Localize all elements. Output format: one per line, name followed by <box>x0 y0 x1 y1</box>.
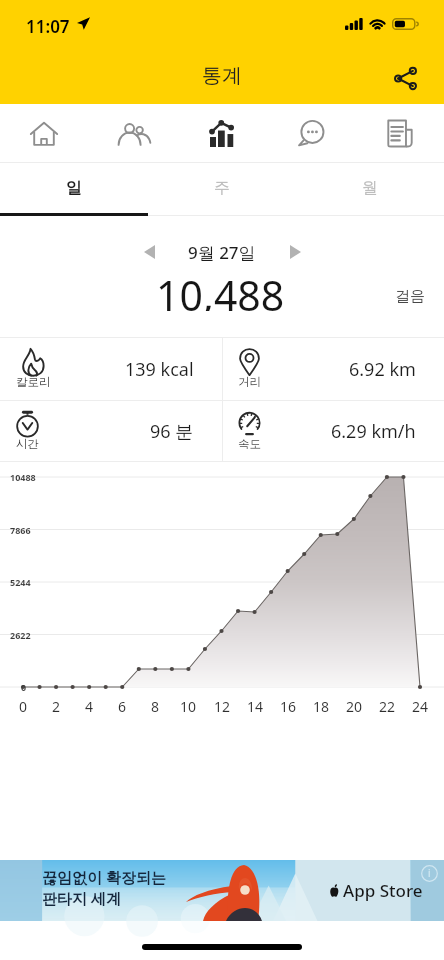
staticText: 5244 <box>10 576 31 588</box>
staticText: 4 <box>75 697 103 716</box>
staticText: 주 <box>214 178 230 198</box>
staticText: 18 <box>307 697 335 716</box>
staticText: 12 <box>208 697 236 716</box>
button[interactable]: Previous day <box>129 232 169 272</box>
button[interactable]: Statistics <box>177 104 266 163</box>
staticText: App Store <box>343 879 423 902</box>
staticText: 6.92 km <box>349 357 416 382</box>
button[interactable]: 속도 <box>222 401 444 461</box>
button[interactable]: Ad information <box>421 865 438 882</box>
button[interactable]: News <box>355 104 444 163</box>
staticText: 월 <box>362 178 378 198</box>
staticText: 10,488 <box>156 267 285 311</box>
button[interactable]: 끊임없이 확장되는 판타지 세계 <box>0 860 444 921</box>
staticText: 속도 <box>238 437 261 451</box>
staticText: 통계 <box>202 63 242 88</box>
staticText: 8 <box>141 697 169 716</box>
staticText: 22 <box>373 697 401 716</box>
staticText: 칼로리 <box>16 375 51 389</box>
staticText: 9월 27일 <box>188 241 256 264</box>
staticText: 0 <box>21 681 27 693</box>
staticText: 시간 <box>16 437 39 451</box>
staticText: 20 <box>340 697 368 716</box>
staticText: 10488 <box>10 471 36 483</box>
button[interactable]: 칼로리 <box>0 338 222 400</box>
staticText: 6.29 km/h <box>331 419 416 444</box>
button[interactable]: Chat <box>266 104 355 163</box>
button[interactable]: 시간 <box>0 401 222 461</box>
staticText: 96 분 <box>150 419 194 444</box>
staticText: 6 <box>108 697 136 716</box>
staticText: 2 <box>42 697 70 716</box>
button[interactable]: 주 <box>148 163 296 216</box>
staticText: 7866 <box>10 524 31 536</box>
staticText: 139 kcal <box>125 357 194 382</box>
staticText: 끊임없이 확장되는 판타지 세계 <box>42 867 166 908</box>
staticText: 걸음 <box>395 287 425 306</box>
staticText: 16 <box>274 697 302 716</box>
staticText: 14 <box>241 697 269 716</box>
button[interactable]: Share <box>382 55 428 101</box>
staticText: 11:07 <box>26 15 70 38</box>
staticText: 일 <box>66 178 82 198</box>
button[interactable]: Home <box>0 104 88 163</box>
staticText: 2622 <box>10 629 31 641</box>
staticText: 0 <box>9 697 37 716</box>
staticText: 거리 <box>238 375 261 389</box>
staticText: i <box>428 866 431 880</box>
button[interactable]: 일 <box>0 163 148 216</box>
staticText: 10 <box>174 697 202 716</box>
button[interactable]: Friends <box>88 104 177 163</box>
button[interactable]: Next day <box>275 232 315 272</box>
button[interactable]: 월 <box>296 163 444 216</box>
staticText: 24 <box>406 697 434 716</box>
button[interactable]: 거리 <box>222 338 444 400</box>
